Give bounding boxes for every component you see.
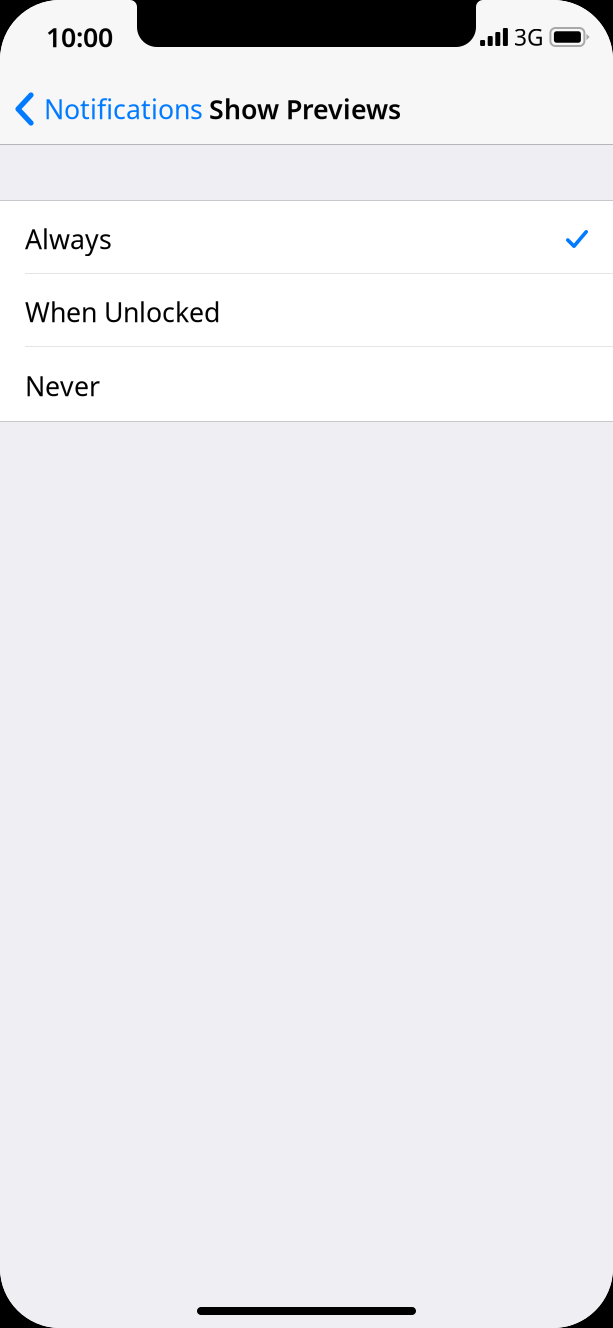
- button[interactable]: Always: [0, 201, 613, 274]
- staticText: Never: [25, 368, 100, 404]
- staticText: Notifications: [44, 91, 203, 127]
- staticText: Always: [25, 221, 112, 257]
- button[interactable]: Never: [0, 347, 613, 421]
- button[interactable]: When Unlocked: [0, 274, 613, 347]
- button[interactable]: Back to Notifications: [0, 68, 209, 150]
- staticText: 3G: [514, 22, 544, 52]
- staticText: Show Previews: [209, 91, 401, 127]
- staticText: When Unlocked: [25, 294, 220, 330]
- staticText: 10:00: [46, 19, 113, 55]
